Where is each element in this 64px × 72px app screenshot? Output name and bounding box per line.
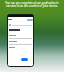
staticText: You can pre-complete a loan application … [1,1,63,8]
button[interactable] [21,58,28,61]
button[interactable] [27,19,33,21]
